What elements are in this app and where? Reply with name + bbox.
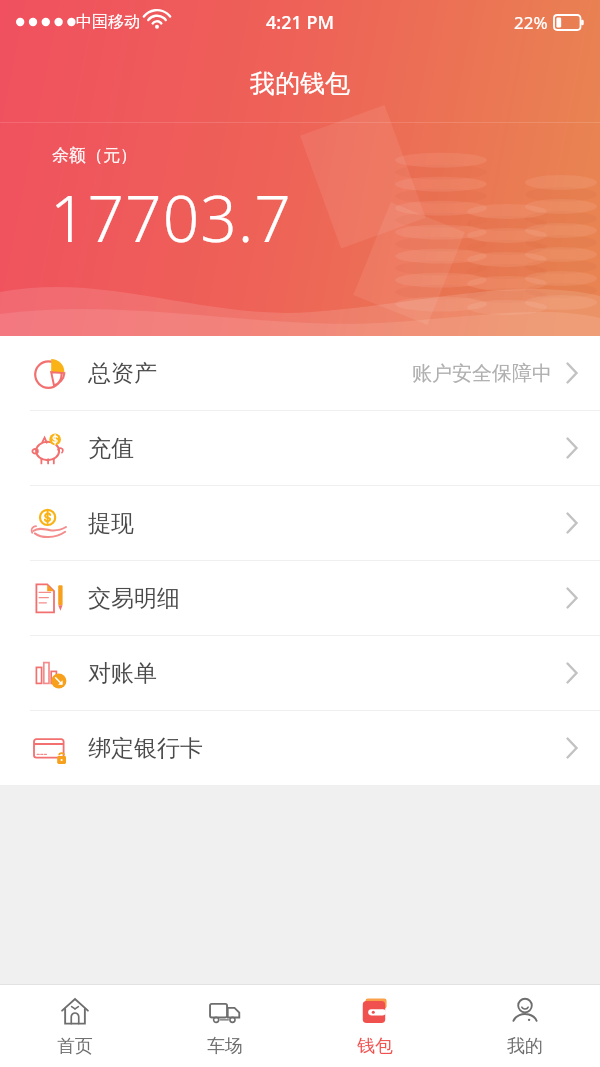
staticText: 4:21 PM — [266, 10, 334, 35]
button[interactable]: 总资产 — [0, 336, 600, 410]
button[interactable]: 我的 — [450, 985, 600, 1067]
staticText: 交易明细 — [88, 584, 180, 613]
button[interactable]: 提现 — [0, 486, 600, 560]
staticText: 账户安全保障中 — [412, 361, 552, 386]
button[interactable]: 绑定银行卡 — [0, 711, 600, 785]
staticText: 17703.7 — [50, 174, 292, 261]
button[interactable]: 首页 — [0, 985, 150, 1067]
staticText: 余额（元） — [52, 145, 137, 166]
button[interactable]: 充值 — [0, 411, 600, 485]
button[interactable]: 钱包 — [300, 985, 450, 1067]
button[interactable]: 交易明细 — [0, 561, 600, 635]
staticText: 充值 — [88, 434, 134, 463]
staticText: 22% — [514, 11, 548, 34]
staticText: 总资产 — [88, 359, 157, 388]
staticText: 我的 — [507, 1035, 543, 1058]
staticText: 首页 — [57, 1035, 93, 1058]
staticText: 车场 — [207, 1035, 243, 1058]
staticText: 对账单 — [88, 659, 157, 688]
button[interactable]: 对账单 — [0, 636, 600, 710]
staticText: 绑定银行卡 — [88, 734, 203, 763]
staticText: 提现 — [88, 509, 134, 538]
button[interactable]: 车场 — [150, 985, 300, 1067]
staticText: 钱包 — [357, 1035, 393, 1058]
staticText: 我的钱包 — [250, 68, 350, 99]
staticText: 中国移动 — [76, 12, 140, 32]
